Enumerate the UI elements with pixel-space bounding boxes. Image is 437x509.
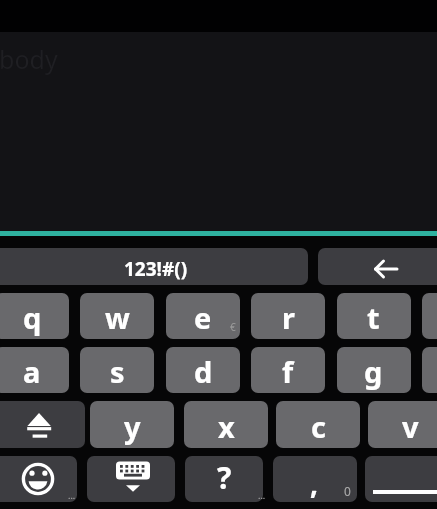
staticText: a [23,352,41,391]
staticText: g [364,352,383,391]
staticText: x [218,407,235,446]
button[interactable] [273,456,357,502]
button[interactable] [276,401,360,448]
staticText: v [402,407,419,446]
staticText: f [282,352,294,391]
staticText: q [23,298,42,337]
button[interactable] [318,248,437,285]
staticText: d [194,352,213,391]
button[interactable] [90,401,174,448]
button[interactable] [166,347,240,393]
staticText: y [124,407,141,446]
button[interactable] [365,456,437,502]
button[interactable] [0,293,69,339]
button[interactable] [80,347,154,393]
staticText: ... [258,489,266,501]
button[interactable] [0,456,77,502]
button[interactable] [0,248,308,285]
button[interactable] [87,456,175,502]
staticText: c [311,407,326,446]
button[interactable] [251,293,325,339]
button[interactable] [80,293,154,339]
button[interactable] [0,401,85,448]
button[interactable] [422,347,437,393]
button[interactable] [337,347,411,393]
button[interactable] [251,347,325,393]
button[interactable] [185,456,263,502]
staticText: w [105,298,130,337]
staticText: 0 [344,483,351,499]
staticText: , [310,464,318,502]
staticText: s [110,352,125,391]
staticText: e [194,298,212,337]
staticText: body [0,42,58,76]
button[interactable] [368,401,437,448]
button[interactable] [166,293,240,339]
button[interactable] [337,293,411,339]
button[interactable] [184,401,268,448]
staticText: ? [217,457,232,498]
button[interactable] [0,347,69,393]
staticText: r [282,298,295,337]
button[interactable] [422,293,437,339]
staticText: € [230,320,236,334]
staticText: ... [68,489,76,501]
staticText: 123!#() [124,256,188,282]
staticText: t [367,298,380,337]
